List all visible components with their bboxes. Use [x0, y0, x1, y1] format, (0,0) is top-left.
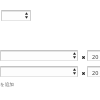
button[interactable]: を追加 — [0, 82, 14, 88]
staticText: 20 — [92, 69, 99, 76]
button[interactable]: Increment or decrement value — [0, 66, 78, 77]
button[interactable]: Increment or decrement value — [0, 50, 78, 61]
other: times — [82, 72, 85, 75]
button[interactable]: 20 — [87, 50, 100, 61]
other: Increment or decrement value — [25, 12, 28, 19]
staticText: 20 — [92, 53, 99, 60]
other: times — [82, 56, 85, 59]
button[interactable]: 20 — [87, 66, 100, 77]
other: Increment or decrement value — [73, 52, 76, 59]
button[interactable]: Increment or decrement value — [1, 10, 31, 21]
other: Increment or decrement value — [73, 68, 76, 75]
